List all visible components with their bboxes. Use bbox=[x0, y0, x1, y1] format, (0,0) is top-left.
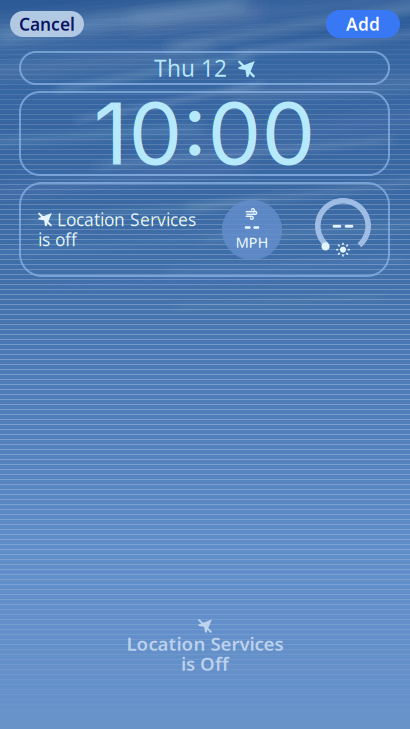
staticText: is Off bbox=[181, 651, 229, 676]
button[interactable]: Add bbox=[326, 10, 400, 38]
staticText: MPH bbox=[235, 232, 268, 252]
staticText: is off bbox=[38, 228, 77, 251]
staticText: 10:00 bbox=[93, 82, 315, 185]
staticText: Thu 12 bbox=[154, 53, 227, 83]
staticText: Location Services bbox=[57, 208, 196, 231]
staticText: Cancel bbox=[19, 12, 75, 35]
staticText: Location Services bbox=[126, 631, 283, 656]
button[interactable]: Cancel bbox=[10, 11, 84, 37]
staticText: Add bbox=[346, 12, 380, 35]
